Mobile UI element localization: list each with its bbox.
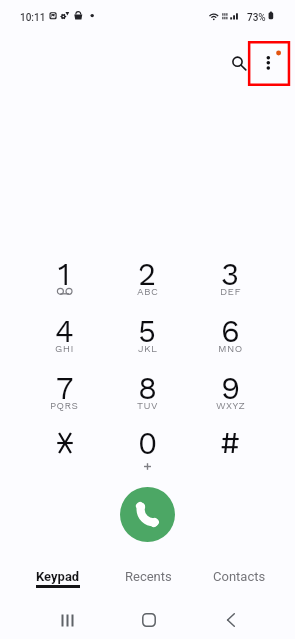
staticText: 8 [138,370,158,406]
staticText: 5 [138,313,157,349]
staticText: 0 [138,425,158,461]
staticText: 2 [138,256,157,292]
staticText: Recents [125,569,172,584]
staticText: 7 [56,370,74,406]
button[interactable]: Home [108,600,190,639]
staticText: 73% [247,12,266,24]
staticText: 9 [221,370,241,406]
staticText: WXYZ [216,400,246,412]
button[interactable]: Recents [103,569,194,597]
button[interactable]: 3 [189,252,272,309]
staticText: 3 [221,256,240,292]
button[interactable]: 5 [106,309,189,366]
button[interactable]: 7 [23,366,106,423]
button[interactable]: Contacts [194,569,285,597]
staticText: ABC [137,286,159,298]
button[interactable] [23,423,106,480]
button[interactable]: More options [247,41,291,87]
button[interactable]: Keypad [13,569,103,597]
button[interactable]: 0 [106,423,189,480]
staticText: DEF [220,286,241,298]
button[interactable]: Search [225,44,250,69]
button[interactable]: Recent apps [26,600,108,639]
button[interactable]: 6 [189,309,272,366]
button[interactable]: 1 [23,252,106,309]
staticText: PQRS [50,400,79,412]
button[interactable]: 9 [189,366,272,423]
button[interactable]: 4 [23,309,106,366]
button[interactable] [189,423,272,480]
staticText: MNO [218,343,243,355]
staticText: 4 [55,313,74,349]
button[interactable]: Back [190,600,272,639]
button[interactable]: Call [120,487,175,542]
staticText: 6 [221,313,240,349]
staticText: 10:11 [20,12,46,24]
staticText: GHI [55,343,74,355]
staticText: JKL [138,343,158,355]
button[interactable]: 8 [106,366,189,423]
staticText: 1 [58,256,71,292]
staticText: Contacts [213,569,266,584]
button[interactable]: 2 [106,252,189,309]
staticText: Keypad [36,569,80,584]
staticText: TUV [137,400,158,412]
